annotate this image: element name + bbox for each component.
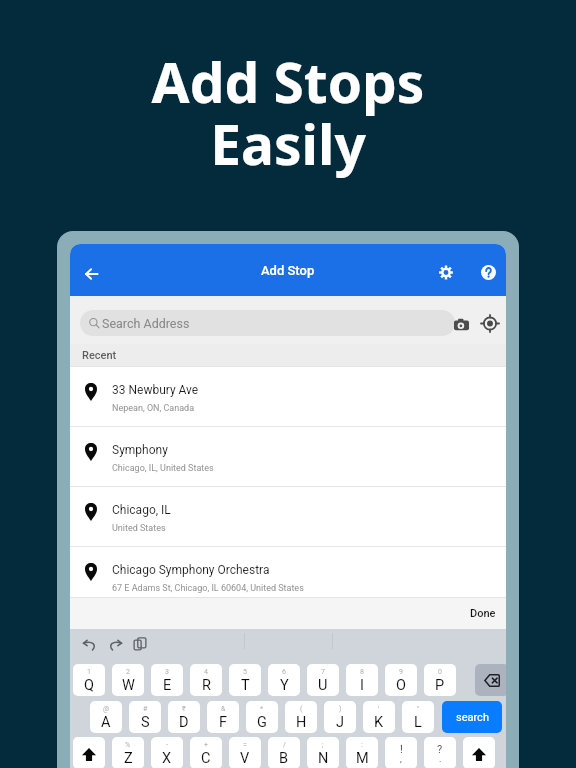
staticText: Add Stops <box>0 44 576 119</box>
button[interactable]: Back <box>73 257 107 291</box>
button[interactable]: / <box>268 737 300 768</box>
staticText: V <box>240 750 250 767</box>
staticText: Add Stop <box>261 263 315 278</box>
staticText: K <box>374 714 384 731</box>
staticText: + <box>204 741 208 749</box>
button[interactable]: # <box>129 701 161 733</box>
staticText: Recent <box>82 349 117 362</box>
button[interactable]: 33 Newbury Ave <box>70 367 506 426</box>
button[interactable]: @ <box>90 701 122 733</box>
staticText: 0 <box>438 668 442 676</box>
button[interactable]: 0 <box>424 664 456 696</box>
staticText: J <box>336 714 345 731</box>
button[interactable]: Redo <box>103 632 127 656</box>
button[interactable]: 2 <box>112 664 144 696</box>
staticText: * <box>260 705 264 713</box>
button[interactable]: ₹ <box>168 701 200 733</box>
staticText: P <box>435 677 445 694</box>
button[interactable]: = <box>229 737 261 768</box>
button[interactable]: Symphony <box>70 427 506 486</box>
staticText: United States <box>112 523 166 534</box>
staticText: B <box>279 750 289 767</box>
button[interactable]: Settings <box>429 255 463 289</box>
staticText: E <box>163 677 172 694</box>
staticText: 6 <box>282 668 286 676</box>
staticText: 5 <box>243 668 247 676</box>
button[interactable]: 3 <box>151 664 183 696</box>
button[interactable]: ( <box>285 701 317 733</box>
staticText: 67 E Adams St, Chicago, IL 60604, United… <box>112 583 304 594</box>
button[interactable]: 6 <box>268 664 300 696</box>
button[interactable]: * <box>246 701 278 733</box>
button[interactable]: 9 <box>385 664 417 696</box>
staticText: @ <box>103 705 110 713</box>
button[interactable]: My location <box>475 306 505 336</box>
button[interactable]: ! <box>385 737 417 768</box>
button[interactable]: - <box>151 737 183 768</box>
button[interactable]: 7 <box>307 664 339 696</box>
staticText: Search Address <box>102 316 190 331</box>
staticText: ? <box>437 743 443 756</box>
staticText: Q <box>84 677 94 694</box>
staticText: M <box>356 750 369 767</box>
button[interactable]: Shift <box>73 737 105 768</box>
staticText: Nepean, ON, Canada <box>112 403 195 414</box>
staticText: ( <box>300 705 303 713</box>
button[interactable]: 4 <box>190 664 222 696</box>
staticText: Done <box>470 607 496 620</box>
staticText: 2 <box>126 668 130 676</box>
staticText: = <box>243 741 247 749</box>
staticText: W <box>122 677 135 694</box>
button[interactable]: Chicago, IL <box>70 487 506 546</box>
staticText: G <box>257 714 267 731</box>
staticText: : <box>361 741 363 749</box>
button[interactable]: 1 <box>73 664 105 696</box>
button[interactable]: 5 <box>229 664 261 696</box>
staticText: ₹ <box>182 705 186 713</box>
button[interactable]: " <box>402 701 434 733</box>
button[interactable]: ) <box>324 701 356 733</box>
button[interactable]: Shift <box>463 737 495 768</box>
staticText: L <box>414 714 422 731</box>
button[interactable]: Camera <box>446 306 476 336</box>
button[interactable]: Chicago Symphony Orchestra <box>70 547 506 597</box>
button[interactable]: ? <box>424 737 456 768</box>
button[interactable]: Done <box>460 602 506 625</box>
button[interactable]: Search Address <box>80 310 455 336</box>
staticText: . <box>439 754 442 765</box>
staticText: / <box>283 741 286 749</box>
staticText: 1 <box>87 668 91 676</box>
button[interactable]: + <box>190 737 222 768</box>
staticText: 7 <box>321 668 325 676</box>
staticText: Y <box>280 677 289 694</box>
staticText: ; <box>322 741 324 749</box>
staticText: search <box>456 711 489 724</box>
button[interactable]: : <box>346 737 378 768</box>
button[interactable]: & <box>207 701 239 733</box>
staticText: 33 Newbury Ave <box>112 383 199 397</box>
staticText: Z <box>124 750 133 767</box>
button[interactable]: % <box>112 737 144 768</box>
button[interactable]: ; <box>307 737 339 768</box>
staticText: 4 <box>204 668 208 676</box>
staticText: Chicago Symphony Orchestra <box>112 563 270 577</box>
staticText: R <box>202 677 211 694</box>
staticText: ) <box>339 705 342 713</box>
button[interactable]: Paste <box>128 632 152 656</box>
staticText: 9 <box>399 668 403 676</box>
staticText: % <box>125 741 131 749</box>
staticText: ! <box>400 743 403 756</box>
button[interactable]: search <box>442 701 502 733</box>
staticText: I <box>360 677 364 694</box>
staticText: O <box>396 677 406 694</box>
staticText: F <box>219 714 228 731</box>
button[interactable]: 8 <box>346 664 378 696</box>
staticText: N <box>318 750 329 767</box>
button[interactable]: Backspace <box>475 664 506 696</box>
button[interactable]: Help <box>471 255 505 289</box>
staticText: D <box>179 714 189 731</box>
button[interactable]: ' <box>363 701 395 733</box>
staticText: " <box>417 705 420 713</box>
button[interactable]: Undo <box>77 632 101 656</box>
staticText: & <box>221 705 226 713</box>
